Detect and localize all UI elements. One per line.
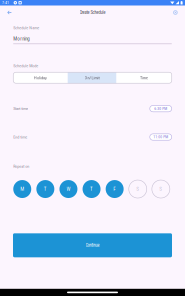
staticText: Morning: [13, 36, 29, 42]
button[interactable]: T: [36, 180, 54, 198]
button[interactable]: 6:30 PM: [150, 105, 172, 112]
staticText: W: [66, 186, 70, 192]
staticText: 6:30 PM: [154, 106, 167, 111]
staticText: S: [159, 186, 162, 192]
button[interactable]: Continue: [13, 233, 172, 257]
staticText: Continue: [85, 243, 99, 248]
button[interactable]: S: [129, 180, 147, 198]
staticText: Holiday: [34, 75, 47, 80]
staticText: T: [90, 186, 93, 192]
staticText: End time: [13, 134, 27, 139]
button[interactable]: Help: [170, 7, 180, 17]
staticText: Create Schedule: [79, 10, 105, 15]
staticText: Schedule Mode: [13, 63, 38, 68]
staticText: F: [113, 186, 116, 192]
button[interactable]: W: [59, 180, 77, 198]
button[interactable]: F: [106, 180, 124, 198]
staticText: Time: [140, 75, 148, 80]
staticText: S: [136, 186, 139, 192]
staticText: Schedule Name: [13, 25, 39, 30]
staticText: Repeat on: [13, 164, 29, 169]
staticText: 7:41: [2, 0, 9, 5]
button[interactable]: On/Limit: [68, 72, 116, 83]
button[interactable]: Time: [116, 72, 172, 83]
button[interactable]: 11:00 PM: [150, 134, 172, 140]
staticText: M: [20, 186, 24, 192]
staticText: Start time: [13, 106, 28, 111]
button[interactable]: Back: [5, 8, 14, 17]
button[interactable]: Holiday: [13, 72, 68, 83]
staticText: T: [44, 186, 47, 192]
button[interactable]: S: [152, 180, 170, 198]
staticText: On/Limit: [85, 75, 100, 80]
staticText: 11:00 PM: [153, 135, 168, 139]
button[interactable]: T: [83, 180, 101, 198]
button[interactable]: M: [13, 180, 31, 198]
